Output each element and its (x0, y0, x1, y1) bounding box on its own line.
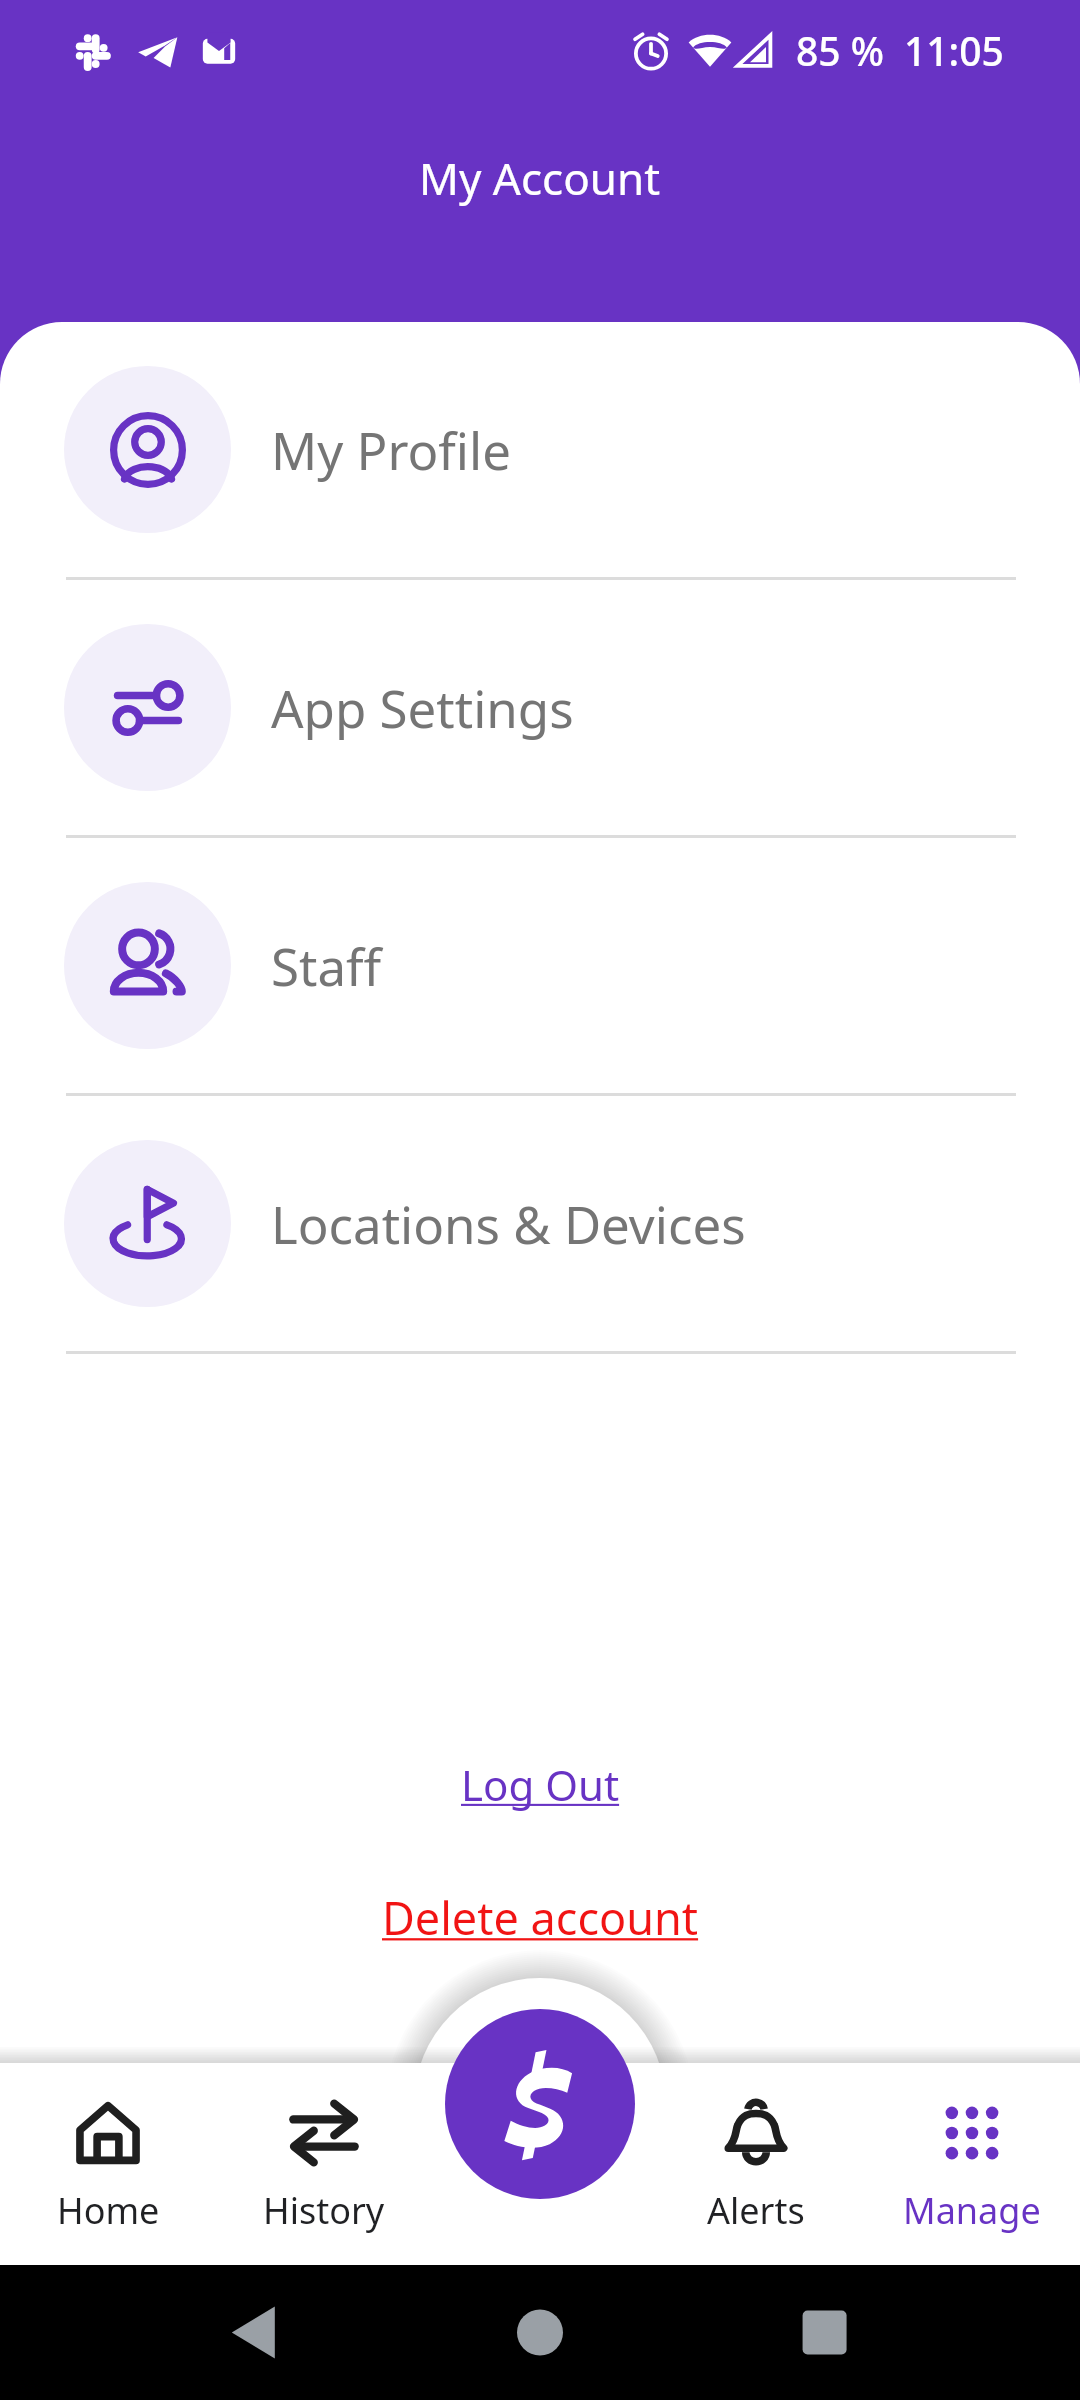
button[interactable]: Locations & Devices (0, 1096, 1080, 1354)
staticText: Home (57, 2186, 160, 2235)
button[interactable]: Delete account (374, 1881, 707, 1954)
staticText: 85 % (796, 24, 884, 77)
staticText: App Settings (271, 673, 574, 742)
staticText: Alerts (707, 2186, 805, 2235)
staticText: Log Out (461, 1756, 620, 1813)
staticText: Delete account (382, 1887, 699, 1948)
staticText: 11:05 (904, 24, 1004, 77)
button[interactable]: Alerts (648, 2063, 864, 2265)
staticText: Locations & Devices (271, 1189, 746, 1258)
button[interactable]: Staff (0, 838, 1080, 1096)
staticText: My Account (419, 148, 661, 208)
button[interactable]: Home (0, 2063, 216, 2265)
button[interactable]: Log Out (453, 1750, 628, 1819)
staticText: My Profile (271, 415, 511, 484)
button[interactable]: My Profile (0, 322, 1080, 580)
staticText: Manage (903, 2186, 1041, 2235)
button[interactable]: Manage (864, 2063, 1080, 2265)
button[interactable]: App Settings (0, 580, 1080, 838)
button[interactable]: History (216, 2063, 432, 2265)
staticText: Staff (271, 931, 382, 1000)
staticText: History (263, 2186, 385, 2235)
button[interactable]: Pay (445, 2009, 635, 2199)
